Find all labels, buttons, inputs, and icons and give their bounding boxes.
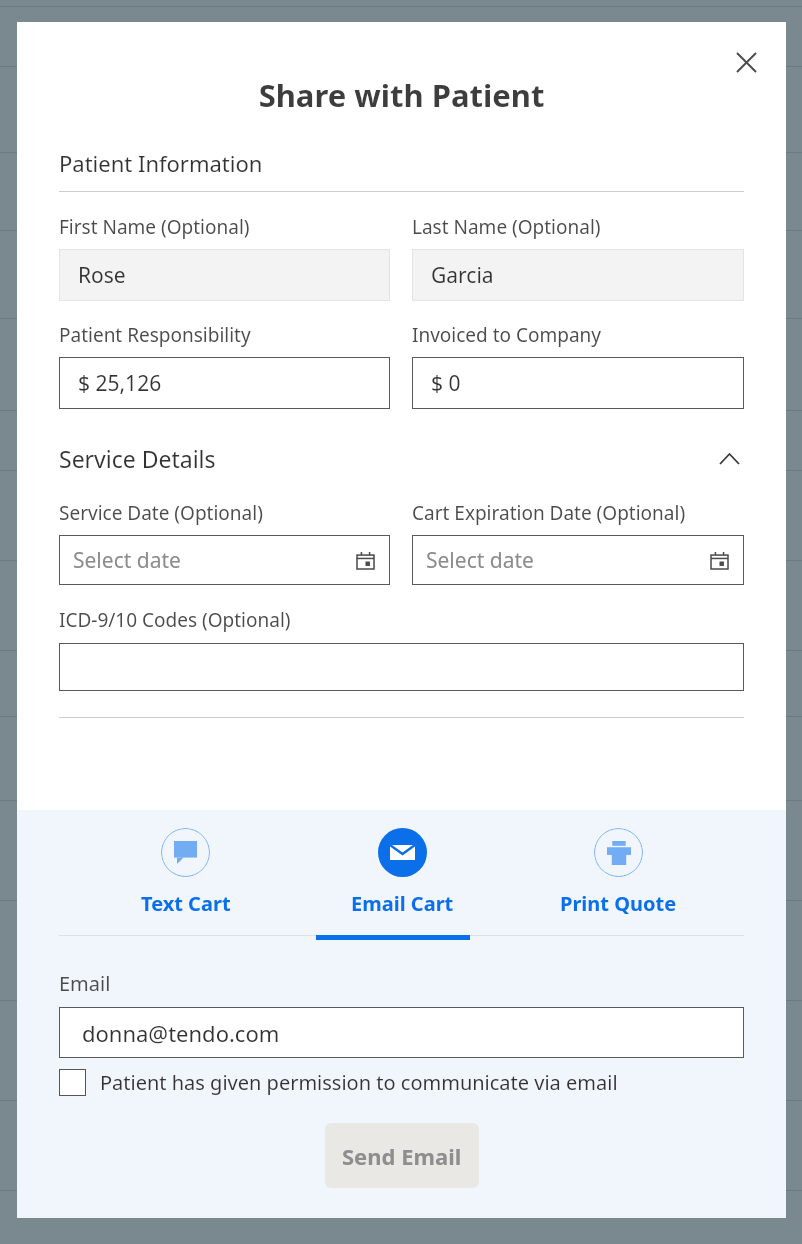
button[interactable]: Email Cart bbox=[294, 828, 510, 935]
staticText: Patient Information bbox=[59, 148, 263, 178]
button[interactable]: Close bbox=[724, 40, 768, 84]
button[interactable]: $ 0 bbox=[412, 357, 744, 409]
button[interactable]: donna@tendo.com bbox=[59, 1007, 744, 1058]
staticText: Patient Responsibility bbox=[59, 322, 251, 348]
staticText: Send Email bbox=[342, 1141, 462, 1171]
button[interactable]: Patient has given permission to communic… bbox=[59, 1069, 618, 1096]
staticText: First Name (Optional) bbox=[59, 214, 250, 240]
staticText: Rose bbox=[78, 261, 126, 290]
staticText: Text Cart bbox=[141, 890, 231, 917]
button[interactable]: Print Quote bbox=[510, 828, 726, 935]
button[interactable]: Rose bbox=[59, 249, 390, 301]
staticText: $ 0 bbox=[431, 369, 461, 398]
staticText: Select date bbox=[73, 546, 357, 575]
button[interactable]: Select date bbox=[412, 535, 744, 585]
staticText: Last Name (Optional) bbox=[412, 214, 601, 240]
staticText: Patient has given permission to communic… bbox=[100, 1069, 618, 1096]
button[interactable]: Service Details bbox=[59, 443, 744, 474]
button[interactable] bbox=[59, 643, 744, 691]
staticText: Share with Patient bbox=[59, 74, 744, 116]
other: Collapse section bbox=[714, 444, 744, 474]
staticText: Print Quote bbox=[560, 890, 677, 917]
staticText: Email bbox=[59, 970, 111, 997]
button[interactable]: $ 25,126 bbox=[59, 357, 390, 409]
button[interactable]: Select date bbox=[59, 535, 390, 585]
staticText: Cart Expiration Date (Optional) bbox=[412, 500, 686, 526]
staticText: ICD-9/10 Codes (Optional) bbox=[59, 607, 291, 633]
staticText: Select date bbox=[426, 546, 711, 575]
staticText: Garcia bbox=[431, 261, 494, 290]
button[interactable]: Garcia bbox=[412, 249, 744, 301]
button[interactable]: Send Email bbox=[325, 1123, 479, 1188]
button[interactable]: Text Cart bbox=[77, 828, 294, 935]
staticText: $ 25,126 bbox=[78, 369, 162, 398]
staticText: Invoiced to Company bbox=[412, 322, 602, 348]
staticText: donna@tendo.com bbox=[82, 1018, 280, 1048]
staticText: Service Date (Optional) bbox=[59, 500, 263, 526]
staticText: Email Cart bbox=[351, 890, 454, 917]
staticText: Service Details bbox=[59, 443, 714, 474]
